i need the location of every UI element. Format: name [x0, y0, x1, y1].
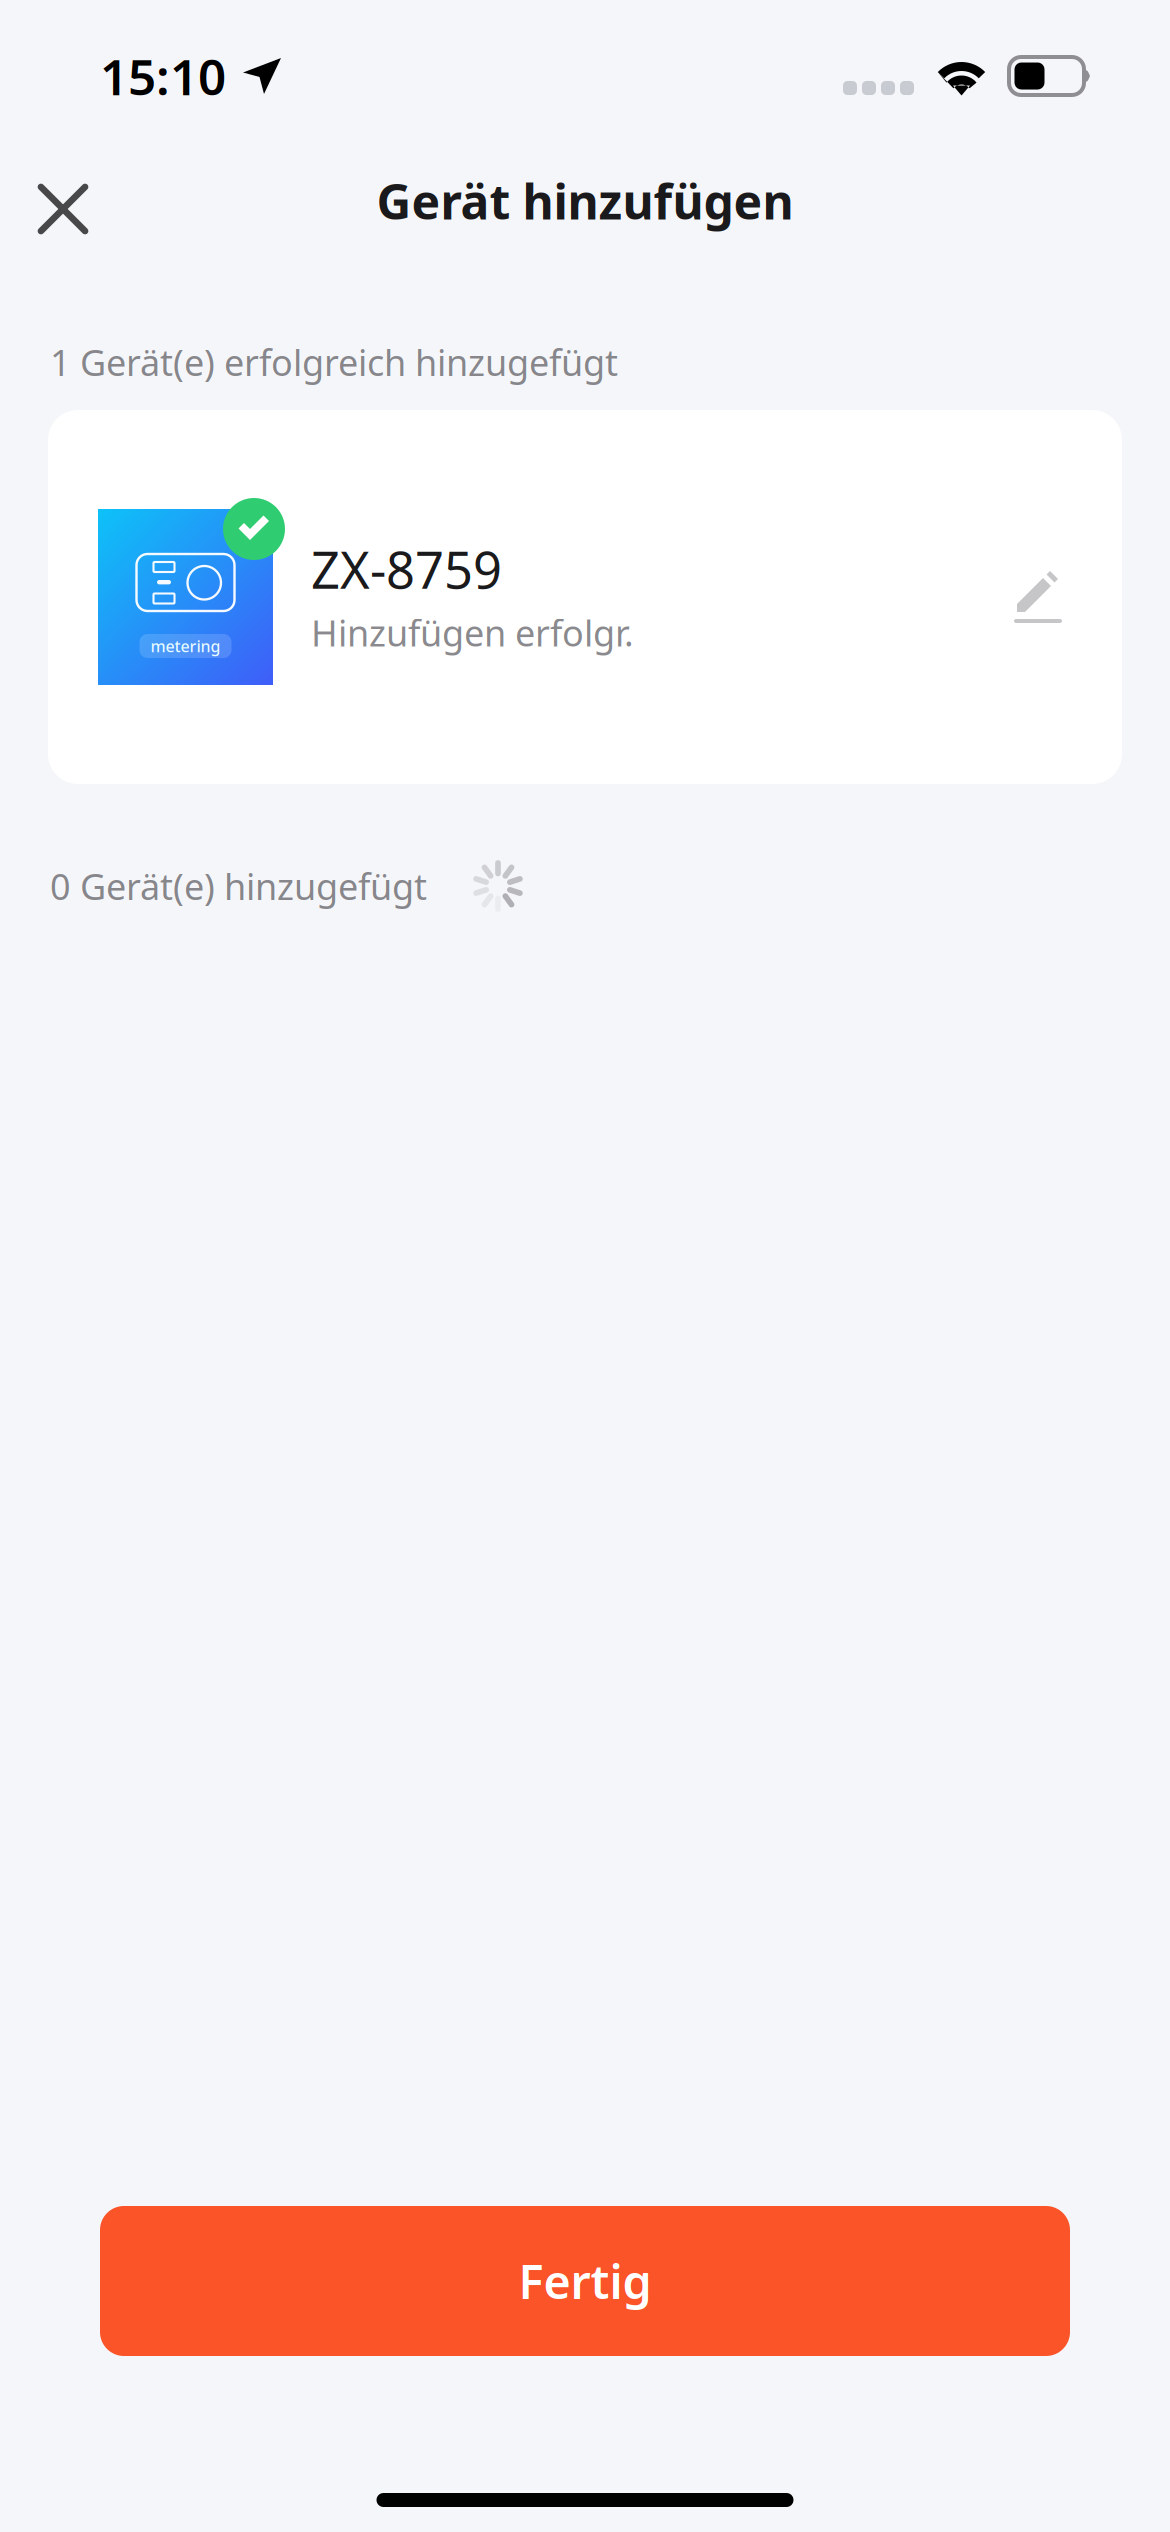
staticText: Fertig — [518, 2250, 651, 2312]
staticText: 0 Gerät(e) hinzugefügt — [50, 862, 427, 910]
button[interactable]: Fertig — [100, 2206, 1070, 2356]
staticText: ZX-8759 — [311, 535, 502, 603]
staticText: metering — [150, 635, 220, 657]
staticText: 15:10 — [100, 43, 226, 109]
staticText: Gerät hinzufügen — [376, 169, 793, 233]
button[interactable]: Gerät umbenennen — [992, 551, 1084, 643]
staticText: 1 Gerät(e) erfolgreich hinzugefügt — [50, 338, 618, 386]
button[interactable]: Schließen — [15, 145, 111, 257]
staticText: Hinzufügen erfolgr. — [311, 609, 634, 656]
